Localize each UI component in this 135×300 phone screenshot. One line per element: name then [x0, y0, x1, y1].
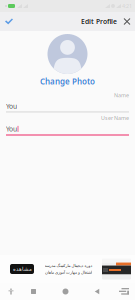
button[interactable]: مشاهده	[0, 255, 135, 283]
button[interactable]: Back	[86, 283, 108, 300]
button[interactable]: Accessibility	[0, 283, 22, 300]
staticText: You	[6, 102, 17, 111]
staticText: 4:21	[122, 2, 132, 10]
staticText: Edit Profile	[81, 17, 117, 26]
staticText: Name	[114, 92, 129, 99]
staticText: دوره دیجیتال مارکتینگ مدرسه	[44, 263, 92, 268]
staticText: User Name	[101, 114, 129, 121]
button[interactable]: Recents	[22, 283, 45, 300]
button[interactable]: Change Photo	[36, 74, 99, 89]
button[interactable]: Home	[54, 283, 76, 300]
staticText: You	[6, 124, 17, 133]
staticText: اشتغال و مهارت آموزی ماهان	[44, 270, 91, 274]
button[interactable]: Save	[0, 12, 18, 30]
staticText: مشاهده	[12, 266, 31, 272]
button[interactable]: Close	[120, 12, 135, 30]
staticText: Change Photo	[40, 76, 95, 87]
button[interactable]: Keyboard	[113, 283, 135, 300]
